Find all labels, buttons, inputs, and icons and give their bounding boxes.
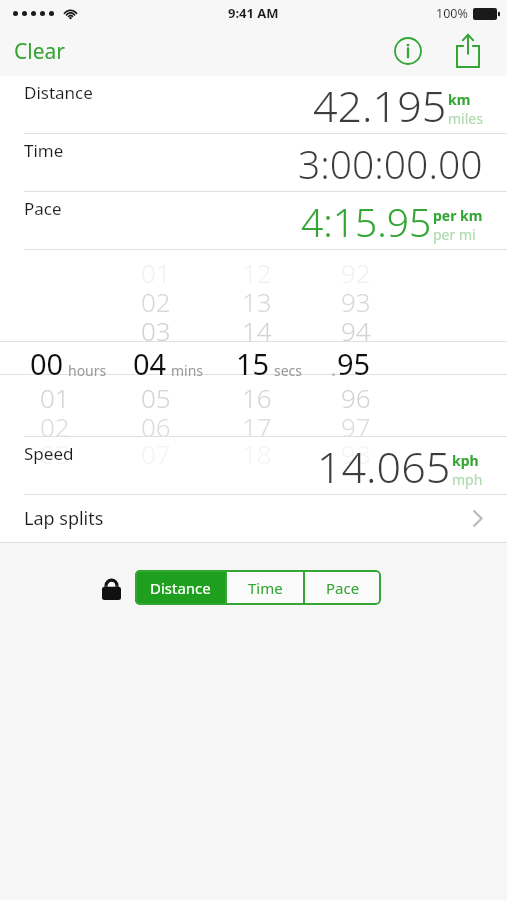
staticText: 9:41 AM xyxy=(228,4,279,22)
button[interactable]: 01 xyxy=(0,250,507,436)
staticText: 00 xyxy=(30,344,64,383)
staticText: 95 xyxy=(337,344,371,383)
staticText: Distance xyxy=(150,578,211,598)
staticText: Lap splits xyxy=(24,506,104,531)
staticText: 02 xyxy=(40,409,70,444)
staticText: per mi xyxy=(433,225,476,244)
button[interactable]: Share xyxy=(447,30,489,72)
button[interactable]: Lock xyxy=(98,575,124,601)
staticText: . xyxy=(331,356,337,382)
staticText: secs xyxy=(274,361,303,380)
staticText: Time xyxy=(248,578,283,598)
staticText: 18 xyxy=(242,436,272,471)
staticText: 04 xyxy=(133,344,167,383)
staticText: Speed xyxy=(24,442,74,465)
button[interactable]: Distance xyxy=(135,570,225,605)
staticText: 01 xyxy=(40,380,70,415)
staticText: 4:15.95 xyxy=(301,195,432,248)
staticText: mph xyxy=(452,470,483,489)
staticText: 14.065 xyxy=(317,437,451,493)
staticText: 93 xyxy=(341,284,371,319)
button[interactable]: Time xyxy=(227,570,303,605)
button[interactable]: Lap splits xyxy=(0,495,507,542)
staticText: Pace xyxy=(24,197,62,220)
staticText: 42.195 xyxy=(313,76,447,132)
staticText: 16 xyxy=(242,380,272,415)
staticText: 03 xyxy=(40,436,70,471)
button[interactable]: Distance xyxy=(0,76,507,133)
staticText: 98 xyxy=(341,436,371,471)
button[interactable]: Speed xyxy=(0,437,507,494)
staticText: 100% xyxy=(436,5,468,22)
staticText: 97 xyxy=(341,409,371,444)
button[interactable]: Time xyxy=(0,134,507,191)
staticText: Distance xyxy=(24,81,93,104)
button[interactable]: Pace xyxy=(0,192,507,249)
staticText: per km xyxy=(433,206,483,225)
staticText: hours xyxy=(68,361,107,380)
staticText: 03 xyxy=(141,313,171,348)
staticText: 15 xyxy=(236,344,270,383)
staticText: Time xyxy=(24,139,64,162)
staticText: 14 xyxy=(242,313,272,348)
staticText: 06 xyxy=(141,409,171,444)
button[interactable]: Pace xyxy=(305,570,381,605)
staticText: 05 xyxy=(141,380,171,415)
staticText: 13 xyxy=(242,284,272,319)
staticText: 07 xyxy=(141,436,171,471)
staticText: miles xyxy=(448,109,483,128)
staticText: 96 xyxy=(341,380,371,415)
staticText: 92 xyxy=(341,255,371,290)
staticText: 02 xyxy=(141,284,171,319)
staticText: 3:00:00.00 xyxy=(298,137,483,190)
staticText: mins xyxy=(171,361,204,380)
button[interactable]: Info xyxy=(389,32,427,70)
staticText: 17 xyxy=(242,409,272,444)
staticText: km xyxy=(448,90,471,109)
staticText: 01 xyxy=(141,255,171,290)
staticText: Clear xyxy=(14,37,65,66)
staticText: 94 xyxy=(341,313,371,348)
button[interactable]: Clear xyxy=(0,28,81,75)
staticText: kph xyxy=(452,451,479,470)
staticText: 12 xyxy=(242,255,272,290)
staticText: Pace xyxy=(326,578,360,598)
